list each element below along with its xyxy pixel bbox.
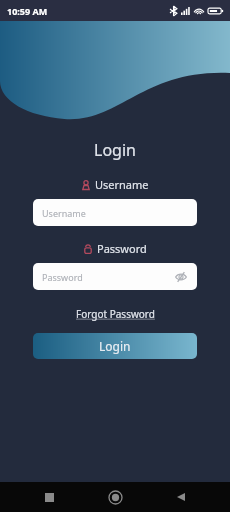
staticText: Login [99,338,131,354]
button[interactable]: Home [98,482,132,512]
staticText: Username [95,177,149,192]
button[interactable]: Show password [174,270,188,284]
staticText: Password [42,271,174,283]
button[interactable]: Forgot Password [72,305,159,323]
staticText: Forgot Password [76,307,155,321]
button[interactable]: Password [33,263,197,290]
staticText: Password [97,241,147,256]
button[interactable]: Recent apps [32,482,66,512]
staticText: 10:59 AM [7,5,48,17]
button[interactable]: Back [164,482,198,512]
staticText: Login [94,139,136,161]
button[interactable]: Login [33,333,197,359]
staticText: Username [42,207,188,219]
button[interactable]: Username [33,199,197,226]
